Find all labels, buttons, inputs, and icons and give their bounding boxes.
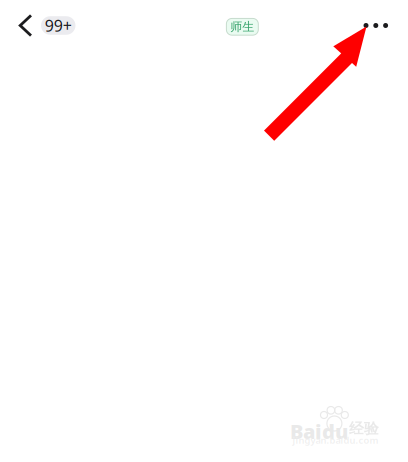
staticText: jingyan.baidu.com [292, 434, 378, 446]
staticText: 99+ [45, 15, 72, 36]
staticText: 师生 [230, 19, 254, 34]
button[interactable]: More options [354, 3, 398, 47]
staticText: Baidu [290, 418, 348, 445]
staticText: 经验 [349, 419, 379, 437]
button[interactable]: Back, 99 plus unread [0, 6, 85, 45]
